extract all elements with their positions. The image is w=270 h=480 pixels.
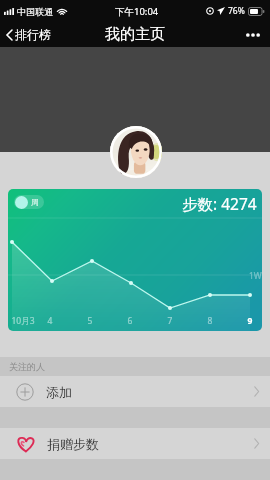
staticText: 1W <box>249 270 262 282</box>
staticText: 10月3 <box>10 315 36 327</box>
staticText: 我的主页 <box>105 25 165 44</box>
staticText: 6 <box>117 315 143 327</box>
button[interactable]: More options <box>236 25 270 45</box>
button[interactable]: 周 <box>14 195 44 209</box>
staticText: 7 <box>157 315 183 327</box>
staticText: 捐赠步数 <box>47 436 99 452</box>
button[interactable]: 添加 <box>0 376 270 407</box>
staticText: 中国联通 <box>17 6 53 17</box>
staticText: 关注的人 <box>9 361 45 372</box>
staticText: 9 <box>237 315 262 327</box>
staticText: 步数: 4274 <box>182 193 257 214</box>
button[interactable]: 捐赠步数 <box>0 428 270 459</box>
button[interactable]: Profile avatar <box>110 126 162 178</box>
button[interactable]: 排行榜 <box>0 23 59 46</box>
staticText: 8 <box>197 315 223 327</box>
staticText: 下午10:04 <box>115 5 159 18</box>
staticText: 周 <box>31 197 39 207</box>
staticText: 4 <box>37 315 63 327</box>
staticText: 添加 <box>46 384 72 400</box>
button[interactable]: 周 <box>8 189 262 331</box>
staticText: 排行榜 <box>15 27 51 42</box>
staticText: 76% <box>228 5 245 17</box>
staticText: 5 <box>77 315 103 327</box>
